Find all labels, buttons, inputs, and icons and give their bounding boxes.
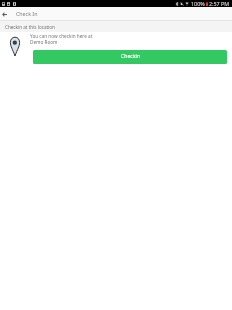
staticText: Checkin: [121, 53, 140, 60]
staticText: 2:57 PM: [209, 0, 230, 7]
staticText: Demo Room: [30, 39, 58, 45]
button[interactable]: Checkin: [33, 50, 227, 64]
staticText: Checkin at this location: [5, 24, 55, 30]
staticText: You can now checkin here at: [30, 33, 93, 39]
button[interactable]: Navigate up: [0, 7, 12, 21]
staticText: 100%: [191, 0, 205, 7]
staticText: Check In: [16, 10, 38, 17]
other: Location: [10, 37, 20, 56]
